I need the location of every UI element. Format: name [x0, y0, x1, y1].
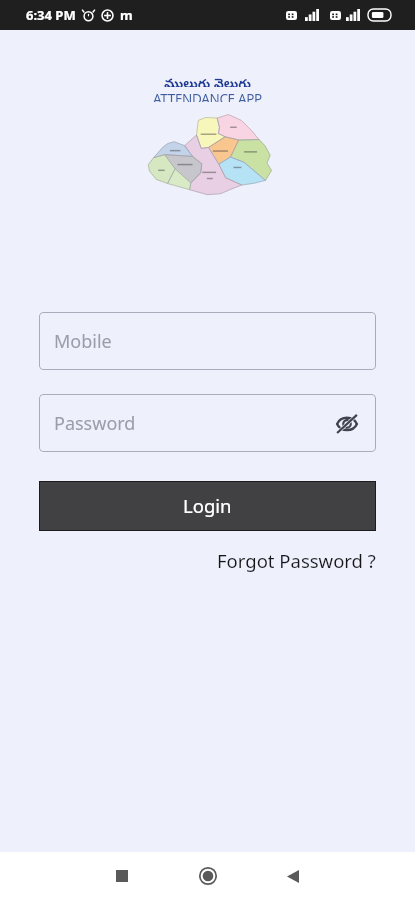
- button[interactable]: Login: [40, 482, 375, 530]
- staticText: Password: [54, 411, 136, 436]
- button[interactable]: Mobile: [39, 312, 376, 370]
- staticText: Forgot Password ?: [217, 548, 376, 573]
- button[interactable]: Forgot Password ?: [217, 548, 376, 573]
- button[interactable]: Back: [269, 852, 317, 900]
- staticText: m: [120, 6, 133, 24]
- button[interactable]: Password: [39, 394, 376, 452]
- staticText: Mobile: [54, 329, 112, 354]
- button[interactable]: Recents: [98, 852, 146, 900]
- staticText: ములుగు వెలుగు: [164, 74, 251, 87]
- staticText: 6:34 PM: [26, 6, 76, 24]
- staticText: ATTENDANCE APP: [153, 90, 262, 102]
- button[interactable]: Home: [184, 852, 232, 900]
- button[interactable]: Toggle password visibility: [332, 408, 362, 438]
- staticText: Login: [183, 493, 232, 518]
